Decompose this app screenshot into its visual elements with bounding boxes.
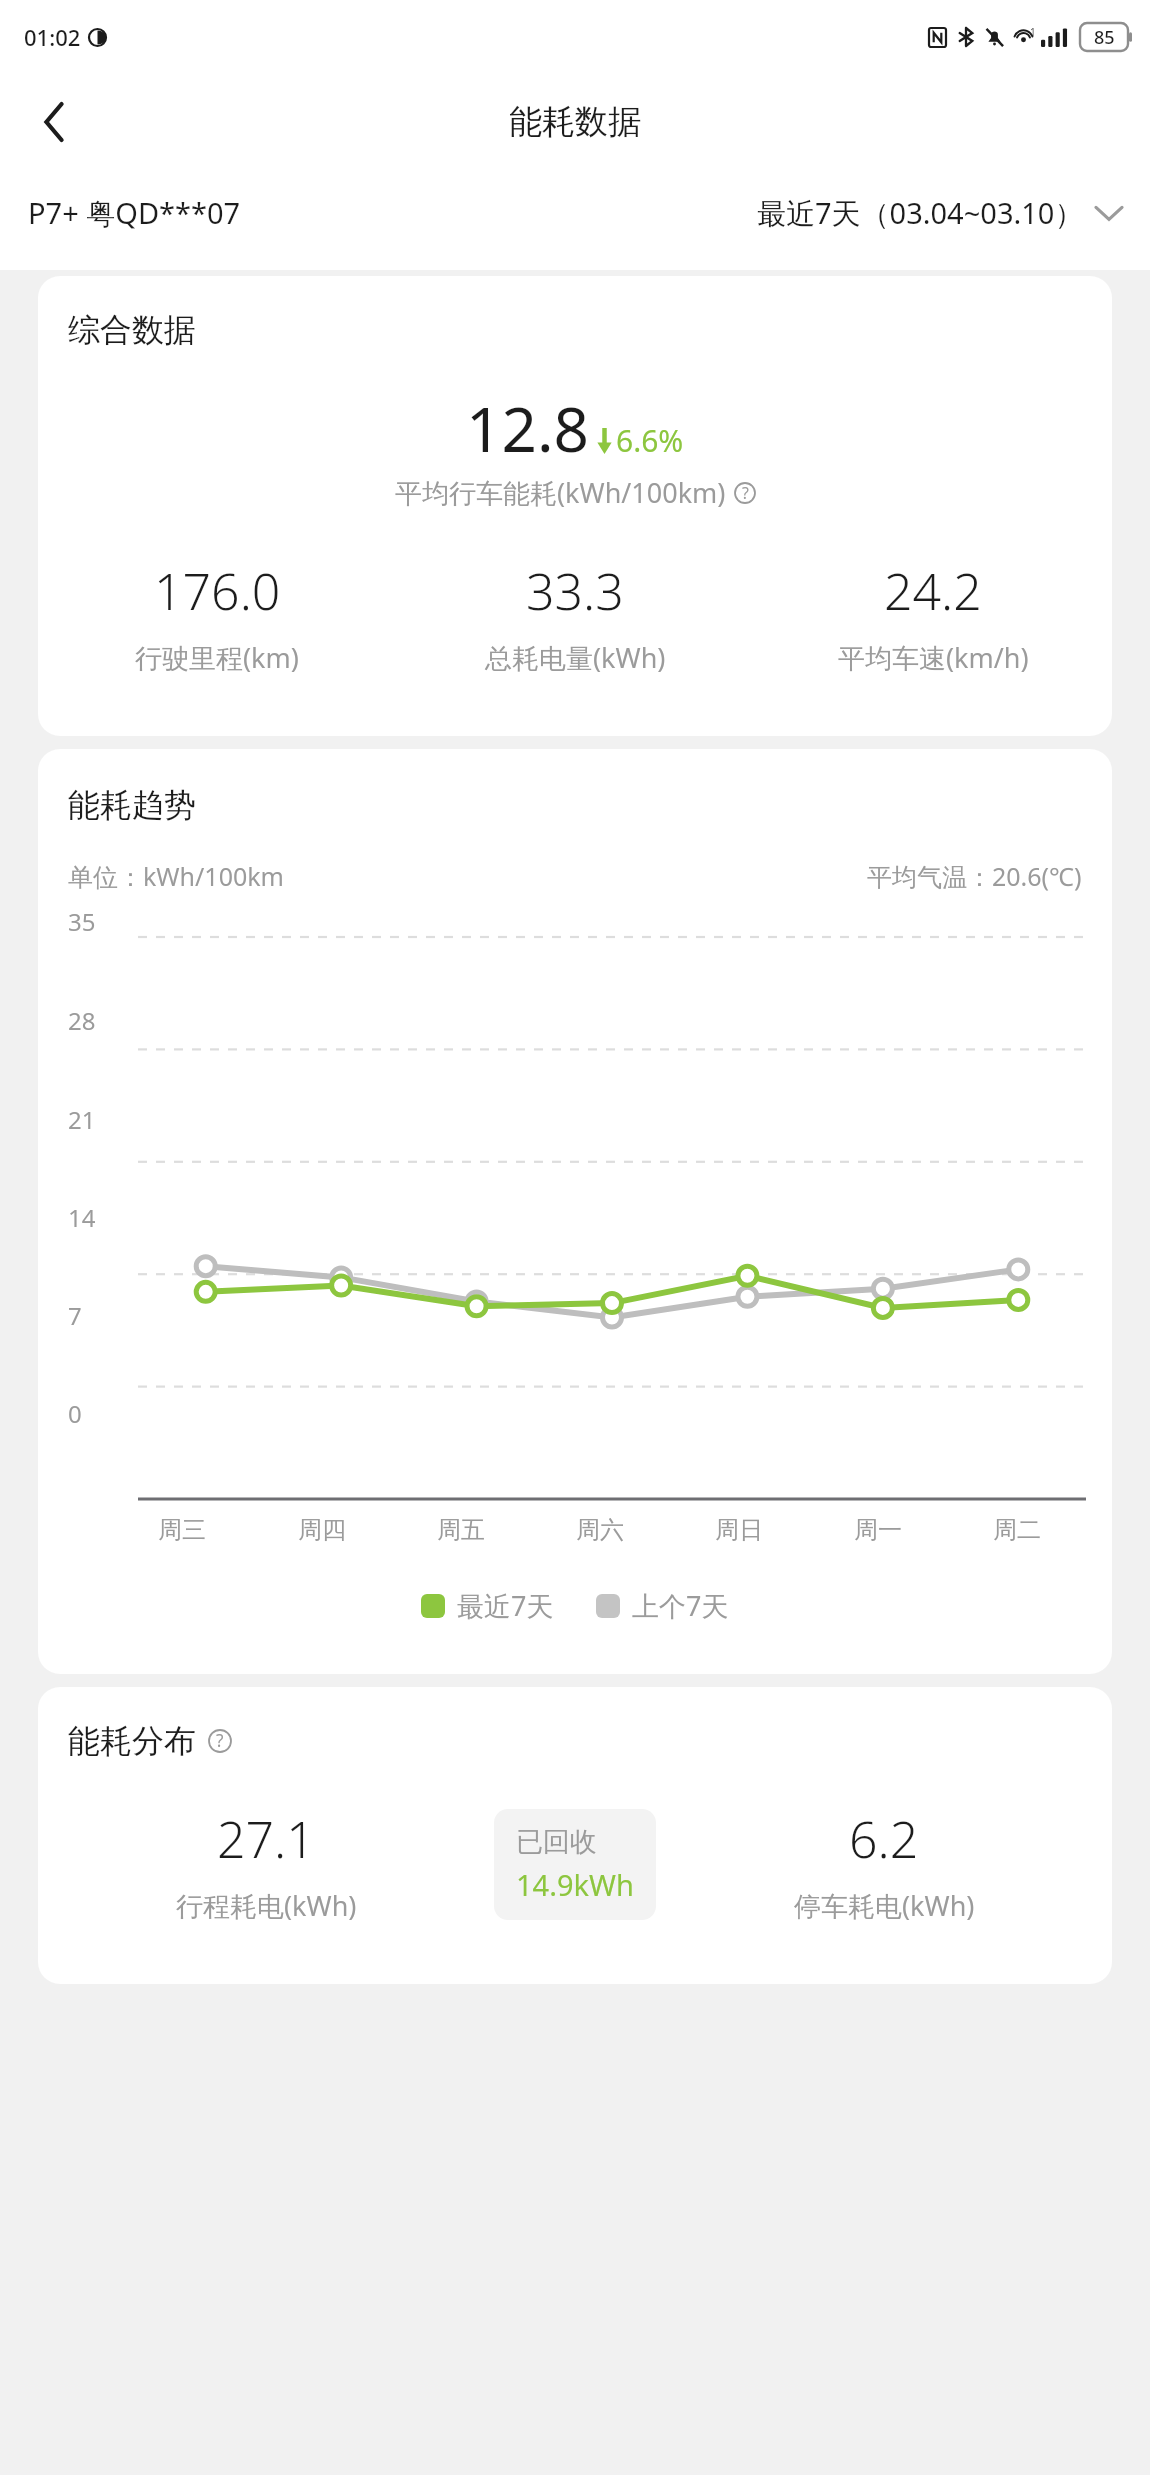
staticText: 周六 bbox=[576, 1515, 624, 1545]
button[interactable]: Back bbox=[18, 86, 90, 158]
staticText: 周五 bbox=[437, 1515, 485, 1545]
staticText: ? bbox=[216, 1729, 224, 1753]
staticText: 14.9kWh bbox=[516, 1865, 634, 1904]
staticText: 上个7天 bbox=[632, 1587, 729, 1624]
staticText: 7 bbox=[68, 1299, 82, 1332]
staticText: 12.8 bbox=[466, 386, 590, 470]
staticText: 6.6% bbox=[616, 420, 684, 461]
staticText: 14 bbox=[68, 1201, 96, 1234]
staticText: ? bbox=[742, 482, 749, 504]
staticText: 行程耗电(kWh) bbox=[176, 1887, 357, 1924]
staticText: 周三 bbox=[158, 1515, 206, 1545]
staticText: 35 bbox=[68, 905, 96, 938]
staticText: 27.1 bbox=[217, 1805, 315, 1873]
staticText: 停车耗电(kWh) bbox=[794, 1887, 975, 1924]
button[interactable]: 176.0 bbox=[38, 557, 396, 676]
staticText: 176.0 bbox=[154, 557, 281, 625]
button[interactable]: 上个7天 bbox=[596, 1587, 729, 1624]
staticText: 周日 bbox=[715, 1515, 763, 1545]
staticText: 01:02 bbox=[24, 22, 81, 52]
staticText: 最近7天（03.04~03.10） bbox=[757, 193, 1084, 233]
staticText: 1 bbox=[1030, 25, 1036, 39]
staticText: 24.2 bbox=[884, 557, 982, 625]
staticText: 周二 bbox=[993, 1515, 1041, 1545]
button[interactable]: 最近7天（03.04~03.10） bbox=[757, 187, 1122, 239]
staticText: 85 bbox=[1094, 25, 1115, 50]
staticText: 综合数据 bbox=[68, 310, 196, 350]
staticText: 平均气温：20.6(℃) bbox=[867, 859, 1082, 893]
staticText: 平均行车能耗(kWh/100km) bbox=[395, 474, 726, 511]
staticText: 最近7天 bbox=[457, 1587, 554, 1624]
staticText: 能耗数据 bbox=[509, 101, 641, 143]
staticText: 33.3 bbox=[526, 557, 624, 625]
staticText: 总耗电量(kWh) bbox=[485, 639, 666, 676]
button[interactable]: 24.2 bbox=[754, 557, 1112, 676]
staticText: 行驶里程(km) bbox=[135, 639, 299, 676]
staticText: 已回收 bbox=[516, 1825, 597, 1859]
button[interactable]: P7+ 粤QD***07 bbox=[28, 187, 241, 239]
staticText: 周一 bbox=[854, 1515, 902, 1545]
staticText: P7+ 粤QD***07 bbox=[28, 193, 241, 233]
staticText: 单位：kWh/100km bbox=[68, 859, 284, 893]
staticText: 21 bbox=[68, 1103, 96, 1136]
staticText: 6.2 bbox=[849, 1805, 919, 1873]
staticText: 能耗分布 bbox=[68, 1721, 196, 1761]
staticText: 平均车速(km/h) bbox=[838, 639, 1029, 676]
staticText: 能耗趋势 bbox=[68, 785, 196, 825]
staticText: 0 bbox=[68, 1397, 82, 1430]
staticText: 周四 bbox=[298, 1515, 346, 1545]
staticText: 28 bbox=[68, 1004, 96, 1037]
button[interactable]: 33.3 bbox=[396, 557, 754, 676]
button[interactable]: 最近7天 bbox=[421, 1587, 554, 1624]
